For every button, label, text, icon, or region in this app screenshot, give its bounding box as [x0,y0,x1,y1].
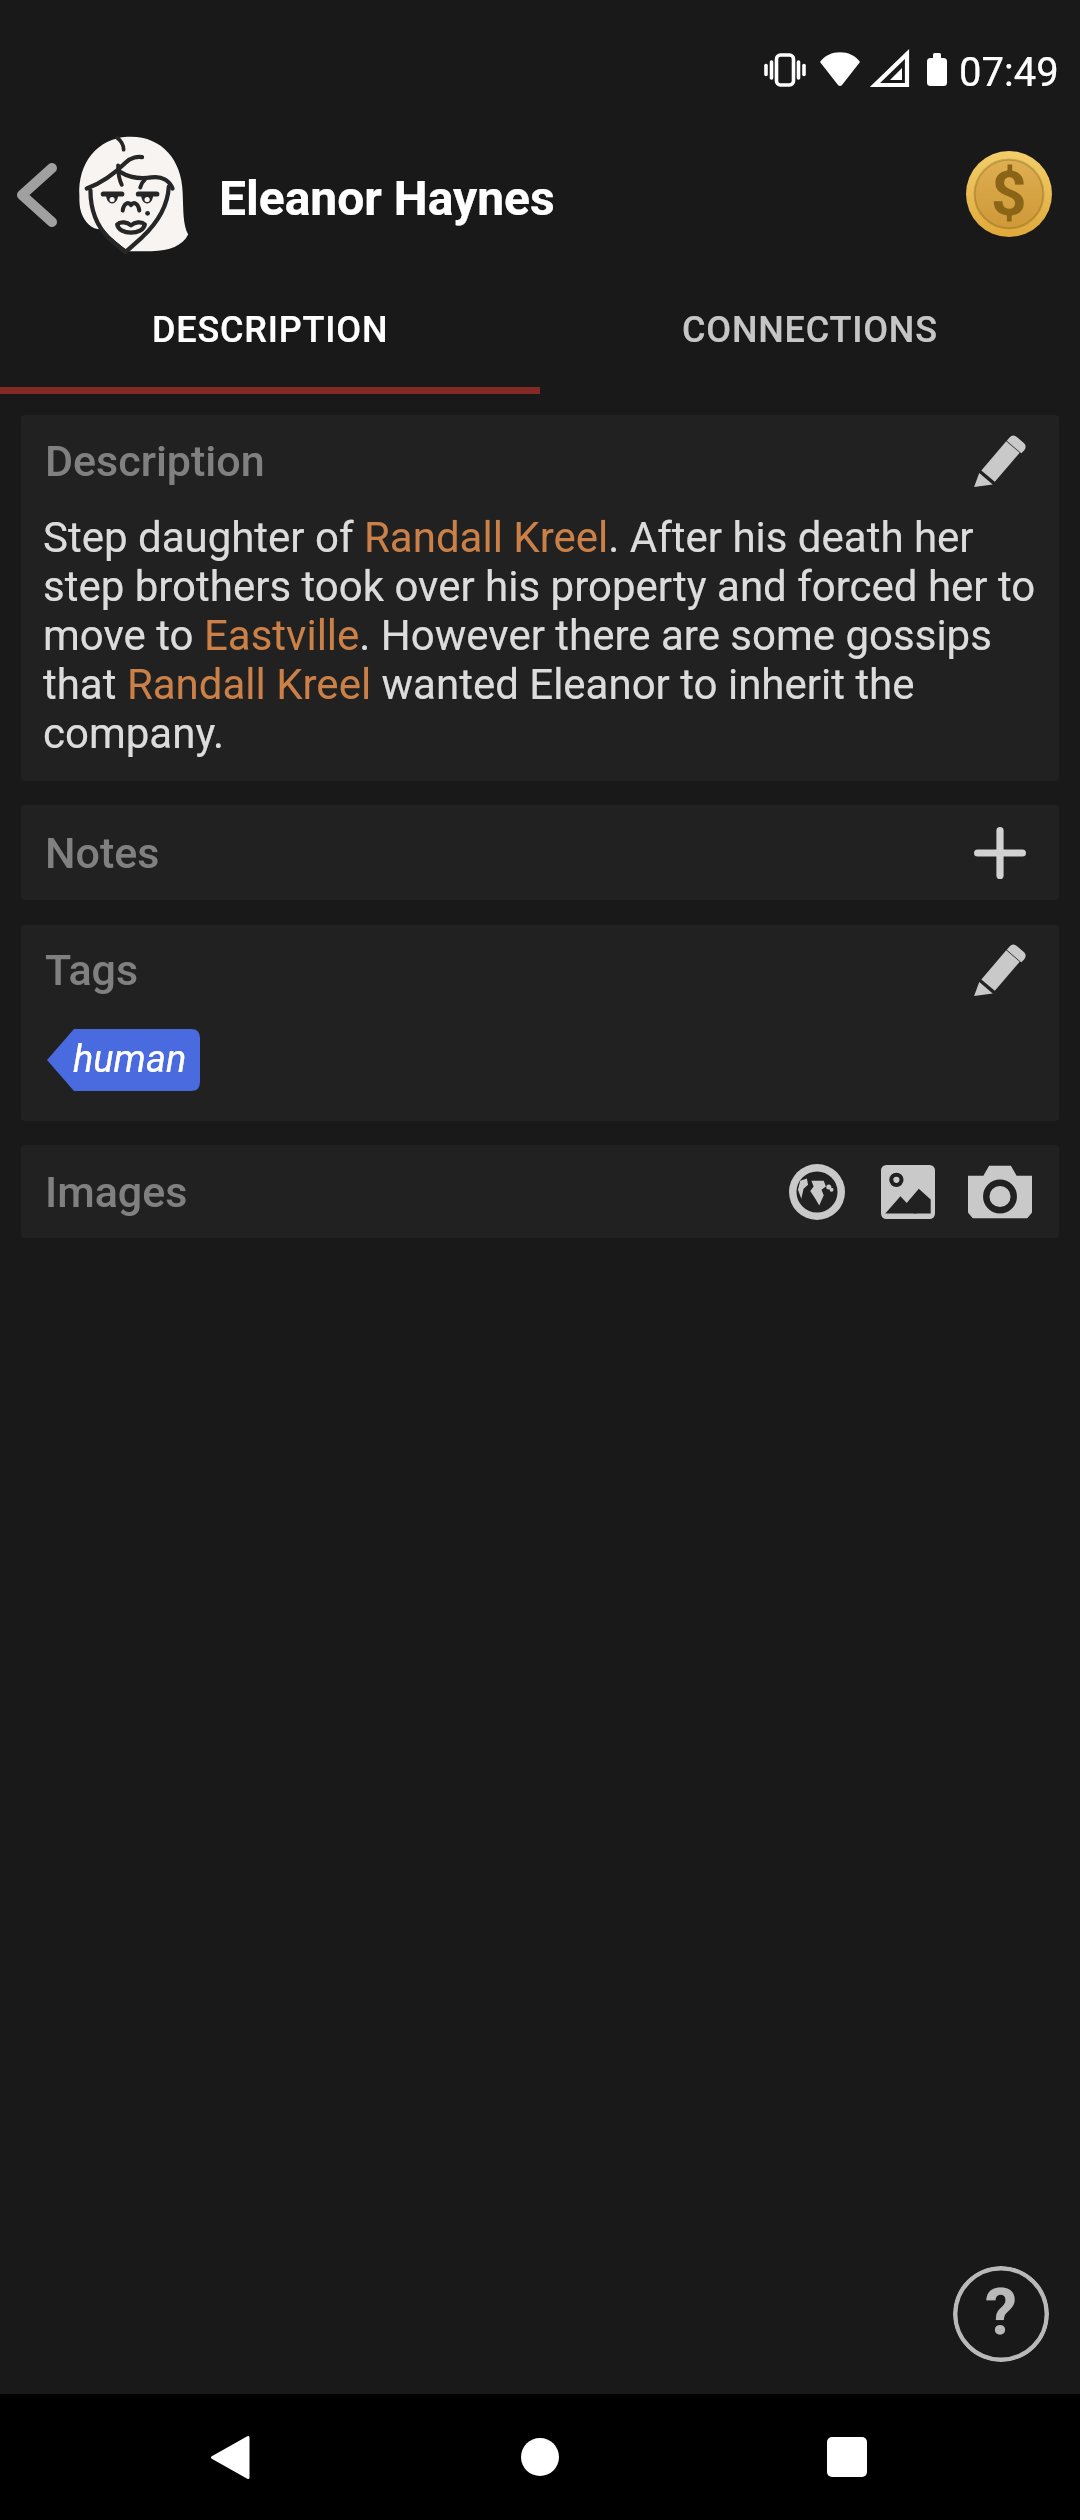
button[interactable]: DESCRIPTION [0,283,540,387]
button[interactable]: Add note [960,813,1040,893]
staticText: Images [45,1167,188,1217]
button[interactable]: Help [953,2266,1049,2362]
button[interactable]: Back [182,2409,278,2505]
staticText: Eleanor Haynes [219,170,555,226]
button[interactable]: Edit description [960,421,1040,501]
button[interactable]: Notes [21,805,1059,900]
button[interactable]: Add image from web [779,1154,855,1230]
button[interactable]: Currency [961,146,1057,242]
staticText: human [73,1037,187,1082]
button[interactable]: Images [21,1145,1059,1238]
staticText: Step daughter of Randall Kreel. After hi… [43,513,1037,758]
staticText: ? [985,2275,1017,2350]
staticText: Notes [45,828,160,878]
staticText: DESCRIPTION [152,309,389,351]
button[interactable]: Recent apps [799,2409,895,2505]
button[interactable]: Add image from gallery [870,1154,946,1230]
button[interactable]: human [47,1029,200,1091]
staticText: $ [991,157,1027,230]
staticText: Description [45,436,265,486]
button[interactable]: Take photo [962,1154,1038,1230]
button[interactable]: Navigate up [0,158,74,232]
staticText: 07:49 [959,49,1059,96]
button[interactable]: Description [21,415,1059,507]
staticText: CONNECTIONS [682,309,938,351]
button[interactable]: Home [492,2409,588,2505]
staticText: Tags [45,945,139,995]
button[interactable]: CONNECTIONS [540,283,1080,387]
button[interactable]: Edit tags [960,930,1040,1010]
button[interactable]: Tags [21,925,1059,1015]
